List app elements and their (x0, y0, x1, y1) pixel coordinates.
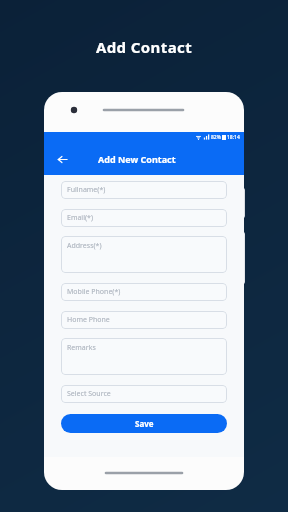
button[interactable]: Remarks (61, 338, 227, 375)
staticText: Home Phone (67, 315, 110, 325)
staticText: Remarks (67, 343, 96, 353)
staticText: Email(*) (67, 213, 94, 223)
button[interactable]: Mobile Phone(*) (61, 283, 227, 301)
staticText: Address(*) (67, 241, 102, 251)
button[interactable]: Fullname(*) (61, 181, 227, 199)
staticText: Fullname(*) (67, 185, 106, 195)
button[interactable]: Save (61, 414, 227, 433)
staticText: Mobile Phone(*) (67, 287, 121, 297)
button[interactable]: Select Source (61, 385, 227, 403)
staticText: Add Contact (0, 37, 288, 57)
staticText: Select Source (67, 389, 111, 399)
staticText: Save (135, 418, 154, 429)
button[interactable]: Email(*) (61, 209, 227, 227)
button[interactable]: Back (52, 149, 72, 169)
button[interactable]: Home Phone (61, 311, 227, 329)
staticText: 82% (211, 134, 221, 141)
staticText: Add New Contact (98, 153, 176, 165)
staticText: 18:14 (227, 134, 240, 141)
button[interactable]: Address(*) (61, 236, 227, 273)
